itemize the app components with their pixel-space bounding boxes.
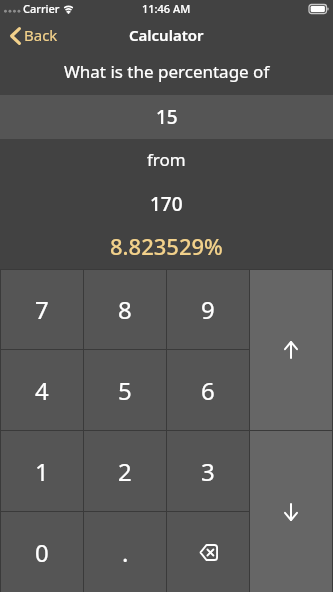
button[interactable]: 5 xyxy=(84,350,166,430)
staticText: 2 xyxy=(118,455,132,488)
staticText: Back xyxy=(24,25,58,45)
staticText: 15 xyxy=(156,104,178,130)
button[interactable]: Back xyxy=(0,20,70,52)
staticText: 8.823529% xyxy=(110,231,223,261)
button[interactable]: 0 xyxy=(1,512,83,592)
staticText: 1 xyxy=(35,455,49,488)
button[interactable]: . xyxy=(84,512,166,592)
button[interactable]: Backspace xyxy=(167,512,249,592)
button[interactable]: Previous field xyxy=(250,270,332,430)
staticText: 4 xyxy=(35,374,49,407)
staticText: Carrier xyxy=(23,1,60,16)
button[interactable]: 170 xyxy=(0,182,333,226)
button[interactable]: Next field xyxy=(250,431,332,592)
button[interactable]: 8 xyxy=(84,270,166,349)
button[interactable]: 15 xyxy=(0,95,333,139)
button[interactable]: 9 xyxy=(167,270,249,349)
staticText: 5 xyxy=(118,374,132,407)
staticText: 8 xyxy=(118,293,132,326)
button[interactable]: 6 xyxy=(167,350,249,430)
staticText: from xyxy=(147,148,186,171)
button[interactable]: 4 xyxy=(1,350,83,430)
button[interactable]: 2 xyxy=(84,431,166,511)
button[interactable]: 7 xyxy=(1,270,83,349)
button[interactable]: 1 xyxy=(1,431,83,511)
staticText: 9 xyxy=(201,293,215,326)
button[interactable]: 3 xyxy=(167,431,249,511)
staticText: What is the percentage of xyxy=(64,60,270,83)
staticText: 11:46 AM xyxy=(142,1,191,16)
staticText: Calculator xyxy=(129,25,204,45)
other: Backspace xyxy=(199,544,218,561)
staticText: 3 xyxy=(201,455,215,488)
staticText: 6 xyxy=(201,374,215,407)
staticText: . xyxy=(122,536,129,569)
staticText: 0 xyxy=(35,536,49,569)
staticText: 7 xyxy=(35,293,49,326)
staticText: 170 xyxy=(150,191,183,217)
